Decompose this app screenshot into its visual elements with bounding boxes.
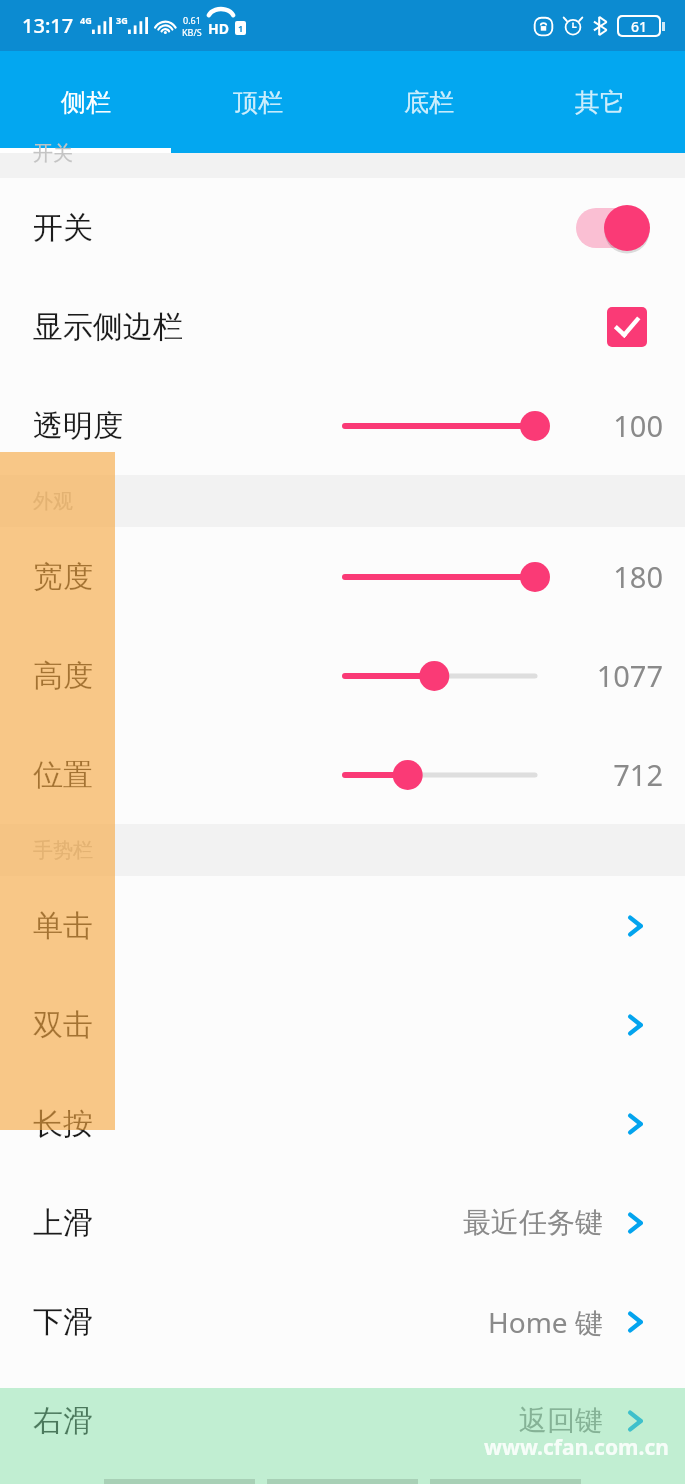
button[interactable]: 宽度	[0, 527, 685, 626]
staticText: 1	[238, 22, 244, 34]
staticText: 下滑	[33, 1303, 93, 1341]
button[interactable]: 双击	[0, 975, 685, 1074]
staticText: 开关	[33, 141, 73, 166]
button[interactable]: 上滑	[0, 1173, 685, 1272]
staticText: 返回键	[519, 1403, 603, 1438]
staticText: 其它	[575, 87, 625, 118]
staticText: 外观	[33, 489, 73, 514]
staticText: 13:17	[22, 12, 74, 39]
staticText: www.cfan.com.cn	[484, 1433, 669, 1462]
other: Open 长按	[619, 1108, 651, 1140]
other: Open 右滑	[619, 1405, 651, 1437]
staticText: 底栏	[404, 87, 454, 118]
button[interactable]: 位置	[0, 725, 685, 824]
button[interactable]: 高度	[0, 626, 685, 725]
staticText: HD	[208, 19, 229, 38]
staticText: 开关	[33, 209, 93, 247]
staticText: Home 键	[488, 1303, 603, 1341]
button[interactable]: 右滑	[0, 1371, 685, 1470]
other: Open 下滑	[619, 1306, 651, 1338]
button[interactable]: 其它	[514, 51, 685, 153]
staticText: 最近任务键	[463, 1205, 603, 1240]
staticText: 4G	[80, 14, 92, 26]
staticText: 61	[631, 17, 648, 35]
staticText: 180	[613, 557, 663, 596]
staticText: 透明度	[33, 407, 123, 445]
staticText: 1077	[596, 656, 663, 695]
staticText: 100	[613, 406, 663, 445]
button[interactable]: 侧栏	[0, 51, 172, 153]
button[interactable]: 单击	[0, 876, 685, 975]
staticText: 单击	[33, 907, 93, 945]
staticText: 位置	[33, 756, 93, 794]
staticText: 长按	[33, 1105, 93, 1143]
staticText: 3G	[116, 14, 128, 26]
button[interactable]: 开关	[0, 178, 685, 277]
button[interactable]: 透明度	[0, 376, 685, 475]
staticText: 显示侧边栏	[33, 308, 183, 346]
staticText: 手势栏	[33, 838, 93, 863]
other: Open 双击	[619, 1009, 651, 1041]
staticText: 上滑	[33, 1204, 93, 1242]
staticText: 侧栏	[61, 87, 111, 118]
button[interactable]: 顶栏	[172, 51, 343, 153]
staticText: KB/S	[182, 26, 202, 38]
staticText: 宽度	[33, 558, 93, 596]
staticText: 右滑	[33, 1402, 93, 1440]
staticText: 712	[613, 755, 663, 794]
button[interactable]: 长按	[0, 1074, 685, 1173]
staticText: 顶栏	[233, 87, 283, 118]
other: Open 单击	[619, 910, 651, 942]
button[interactable]: 显示侧边栏	[0, 277, 685, 376]
staticText: 双击	[33, 1006, 93, 1044]
other: Open 上滑	[619, 1207, 651, 1239]
button[interactable]: 下滑	[0, 1272, 685, 1371]
staticText: 0.61	[183, 14, 201, 26]
staticText: 高度	[33, 657, 93, 695]
button[interactable]: 底栏	[343, 51, 514, 153]
